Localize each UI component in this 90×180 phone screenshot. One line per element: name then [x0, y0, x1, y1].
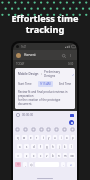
staticText: ⇧	[17, 154, 20, 157]
staticText: a	[19, 145, 21, 149]
staticText: 00:00:00	[22, 113, 34, 117]
staticText: d	[33, 145, 35, 149]
button[interactable]: Key n	[57, 153, 61, 158]
staticText: e	[30, 136, 32, 140]
staticText: x	[33, 154, 35, 158]
button[interactable]: Start timer	[69, 120, 74, 125]
button[interactable]: Key y	[47, 135, 51, 140]
staticText: Preliminary Designs	[44, 70, 72, 78]
staticText: s	[26, 145, 28, 149]
staticText: t	[43, 136, 44, 140]
button[interactable]: Key ,	[23, 162, 27, 167]
staticText: h	[52, 145, 54, 149]
staticText: z	[26, 154, 28, 158]
staticText: ↵	[70, 163, 73, 166]
staticText: q	[17, 136, 19, 140]
button[interactable]: Keyboard tool 6	[54, 127, 59, 132]
button[interactable]: Key i	[59, 135, 63, 140]
button[interactable]: Key r	[35, 135, 39, 140]
button[interactable]: Keyboard tool 8	[70, 127, 75, 132]
button[interactable]: Key z	[24, 153, 29, 158]
staticText: g	[46, 145, 48, 149]
button[interactable]: Key m	[63, 153, 67, 158]
button[interactable]: Key s	[24, 144, 29, 149]
button[interactable]: Keyboard tool 4	[39, 127, 44, 132]
button[interactable]: Key f	[38, 144, 43, 149]
button[interactable]: Key ⌫	[69, 153, 75, 158]
staticText: Mobile Design	[18, 72, 39, 76]
staticText: ⌫	[70, 154, 74, 157]
button[interactable]: Key b	[51, 153, 55, 158]
button[interactable]: Key x	[31, 153, 36, 158]
button[interactable]: Key d	[31, 144, 36, 149]
staticText: Review fit and final product reviews in …	[18, 90, 72, 106]
staticText: n	[58, 154, 60, 158]
staticText: Effortless time tracking	[0, 12, 90, 36]
button[interactable]: Keyboard tool 3	[31, 127, 36, 132]
button[interactable]: Keyboard tool 2	[23, 127, 28, 132]
button[interactable]: Key j	[57, 144, 61, 149]
staticText: .	[63, 163, 64, 167]
button[interactable]: Key t	[41, 135, 45, 140]
staticText: p	[72, 136, 74, 140]
button[interactable]: Key a	[17, 144, 22, 149]
button[interactable]: Key ⇧	[15, 153, 22, 158]
button[interactable]: Enter	[67, 162, 75, 167]
staticText: ›	[41, 72, 42, 76]
button[interactable]: Key ☺	[29, 162, 33, 167]
staticText: Harvest	[24, 53, 36, 57]
button[interactable]: Key q	[15, 135, 20, 140]
staticText: m	[64, 154, 67, 158]
button[interactable]: Key p	[71, 135, 75, 140]
button[interactable]: Key .	[61, 162, 65, 167]
button[interactable]: Emoji	[15, 162, 21, 167]
staticText: Start Time	[18, 82, 32, 86]
button[interactable]: Key e	[29, 135, 33, 140]
button[interactable]: Key c	[38, 153, 43, 158]
staticText: c	[40, 154, 42, 158]
staticText: 9:41	[21, 45, 27, 49]
staticText: TODAY	[16, 62, 25, 66]
button[interactable]: Keyboard tool 5	[46, 127, 51, 132]
button[interactable]: Key v	[45, 153, 49, 158]
button[interactable]: Key o	[65, 135, 69, 140]
staticText: f	[40, 145, 41, 149]
button[interactable]: Key k	[63, 144, 67, 149]
button[interactable]: Key h	[51, 144, 55, 149]
staticText: j	[59, 145, 60, 149]
staticText: 0:00	[68, 62, 74, 66]
button[interactable]: Key w	[22, 135, 27, 140]
staticText: r	[36, 136, 38, 140]
staticText: y	[48, 136, 50, 140]
staticText: v	[46, 154, 48, 158]
button[interactable]: Key u	[53, 135, 57, 140]
staticText: i	[61, 136, 62, 140]
staticText: ,	[25, 163, 26, 167]
staticText: w	[23, 136, 26, 140]
button[interactable]: Key l	[69, 144, 73, 149]
button[interactable]: Keyboard tool 1	[15, 127, 20, 132]
button[interactable]: Keyboard tool 7	[62, 127, 67, 132]
staticText: b	[52, 154, 54, 158]
staticText: o	[66, 136, 68, 140]
staticText: u	[54, 136, 56, 140]
staticText: 9:15 AM	[40, 82, 51, 86]
staticText: k	[64, 145, 66, 149]
button[interactable]: Key g	[45, 144, 49, 149]
staticText: End Time	[59, 82, 72, 86]
button[interactable]: 9:15 AM	[40, 82, 51, 86]
staticText: ☺	[30, 163, 33, 166]
staticText: ☺	[17, 163, 20, 166]
staticText: l	[71, 145, 72, 149]
button[interactable]: More options	[67, 52, 74, 59]
button[interactable]: Search	[60, 52, 67, 59]
